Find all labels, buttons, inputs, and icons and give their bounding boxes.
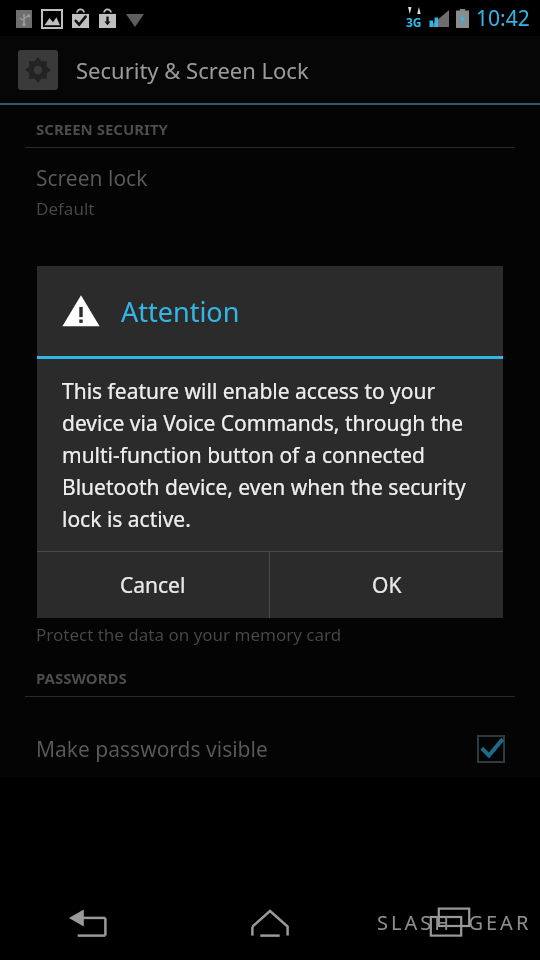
staticText: SLASH GEAR (377, 909, 532, 936)
staticText: Screen lock (36, 164, 148, 193)
staticText: PASSWORDS (36, 668, 127, 688)
staticText: 3G (406, 14, 422, 30)
staticText: Attention (121, 293, 240, 330)
staticText: Protect the data on your memory card (36, 623, 342, 646)
button[interactable]: Encrypt SD card (0, 590, 540, 646)
button[interactable]: Cancel (37, 552, 269, 618)
button[interactable]: Back (0, 885, 180, 960)
button[interactable]: Home (180, 885, 360, 960)
staticText: This feature will enable access to your … (62, 377, 483, 533)
button[interactable]: Make passwords visible (0, 721, 540, 777)
staticText: Default (36, 197, 95, 220)
staticText: Security & Screen Lock (76, 55, 309, 85)
staticText: OK (372, 571, 402, 600)
button[interactable]: Screen lock (0, 164, 540, 220)
staticText: Cancel (120, 571, 186, 600)
button[interactable]: Recent apps (360, 885, 540, 960)
staticText: 10:42 (476, 4, 530, 33)
staticText: SCREEN SECURITY (36, 119, 168, 139)
staticText: Encrypt SD card (36, 590, 192, 619)
button[interactable]: OK (270, 552, 503, 618)
staticText: Make passwords visible (36, 735, 268, 764)
